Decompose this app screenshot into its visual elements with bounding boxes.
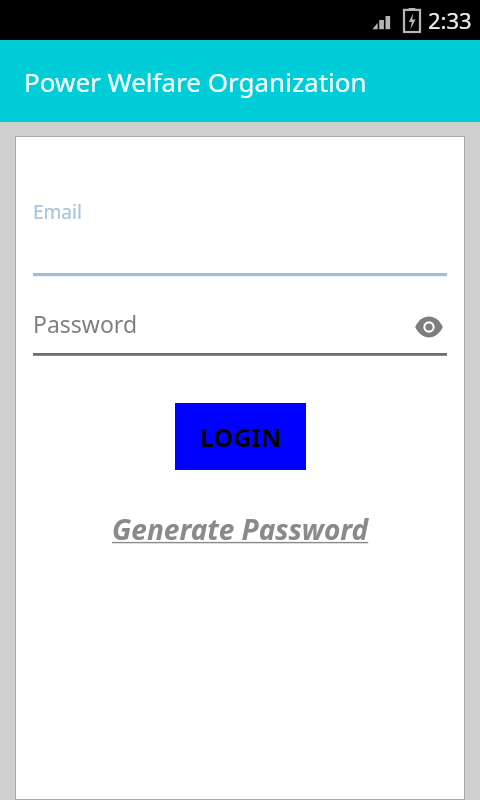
button[interactable]: Generate Password xyxy=(112,510,369,548)
staticText: 2:33 xyxy=(428,5,472,35)
staticText: Email xyxy=(33,199,82,225)
button[interactable]: LOGIN xyxy=(175,403,306,470)
button[interactable]: Password xyxy=(33,307,447,357)
staticText: Generate Password xyxy=(112,510,369,548)
staticText: Power Welfare Organization xyxy=(24,64,367,99)
button[interactable]: Show password xyxy=(411,309,447,345)
staticText: Password xyxy=(33,308,138,339)
button[interactable]: Email xyxy=(33,197,447,277)
staticText: LOGIN xyxy=(200,420,282,454)
